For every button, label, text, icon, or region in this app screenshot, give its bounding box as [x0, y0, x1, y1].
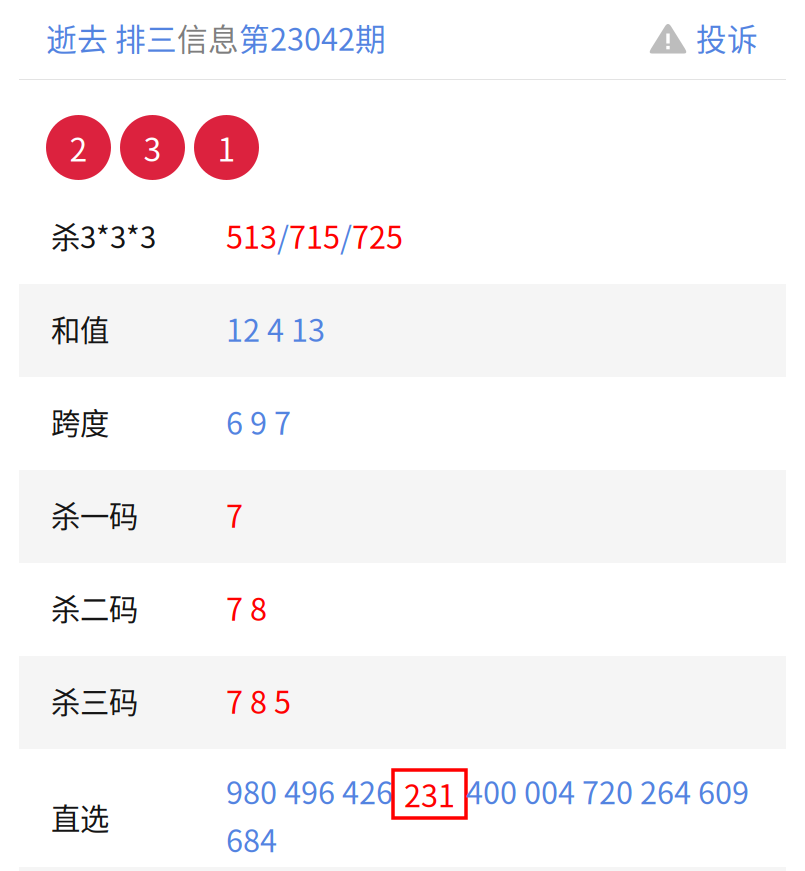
button[interactable]: 直选 — [0, 749, 805, 867]
staticText: 信息 — [177, 15, 239, 60]
staticText: 直选 — [51, 796, 109, 838]
staticText: 第23042期 — [239, 15, 386, 60]
staticText: 980 496 426 — [226, 769, 393, 813]
button[interactable]: 逝去 — [46, 15, 115, 60]
button[interactable]: 跨度 — [0, 377, 805, 470]
staticText: / — [340, 213, 352, 258]
staticText: 7 — [226, 492, 243, 537]
staticText: 投诉 — [696, 15, 758, 60]
button[interactable]: 投诉 — [648, 15, 758, 60]
staticText: 7 8 — [226, 585, 267, 630]
staticText: 排三 — [115, 15, 177, 60]
staticText: 715 — [289, 213, 340, 258]
button[interactable]: 和值 — [0, 284, 805, 377]
staticText: 231 — [404, 772, 455, 816]
staticText: 杀一码 — [51, 493, 138, 536]
staticText: 杀3*3*3 — [51, 214, 156, 257]
staticText: 725 — [352, 213, 403, 258]
staticText: 7 8 5 — [226, 678, 291, 723]
button[interactable]: 杀一码 — [0, 470, 805, 563]
staticText: / — [277, 213, 289, 258]
button[interactable]: 杀三码 — [0, 656, 805, 749]
staticText: 513 — [226, 213, 277, 258]
staticText: 400 004 720 264 609 — [466, 769, 749, 813]
staticText: 逝去 — [46, 15, 115, 60]
staticText: 1 — [217, 124, 235, 171]
button[interactable]: 杀二码 — [0, 563, 805, 656]
staticText: 和值 — [51, 307, 109, 350]
staticText: 3 — [143, 124, 161, 171]
staticText: 杀二码 — [51, 586, 138, 629]
staticText: 2 — [69, 124, 87, 171]
staticText: 12 4 13 — [226, 306, 325, 351]
staticText: 684 — [226, 817, 277, 861]
staticText: 6 9 7 — [226, 399, 291, 444]
button[interactable]: 杀3*3*3 — [0, 191, 805, 284]
staticText: 杀三码 — [51, 679, 138, 722]
staticText: 跨度 — [51, 400, 109, 443]
button[interactable]: 排三 — [115, 15, 386, 60]
